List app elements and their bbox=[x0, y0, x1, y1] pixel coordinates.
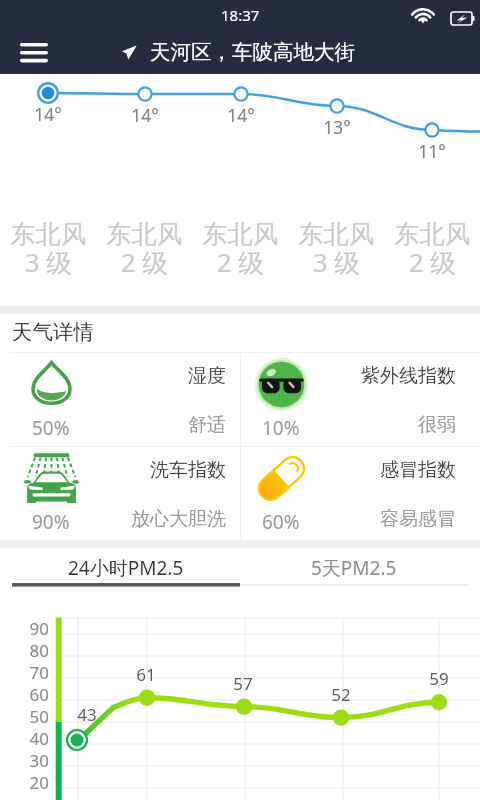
staticText: 80 bbox=[17, 639, 49, 662]
staticText: 5天PM2.5 bbox=[311, 555, 397, 581]
button[interactable]: Menu bbox=[0, 30, 68, 74]
staticText: 20 bbox=[17, 771, 49, 794]
staticText: 14° bbox=[8, 102, 88, 126]
staticText: 2 级 bbox=[217, 245, 264, 280]
staticText: 东北风 bbox=[298, 218, 375, 250]
staticText: 60% bbox=[262, 509, 300, 535]
button[interactable]: 60% bbox=[240, 447, 470, 540]
staticText: 感冒指数 bbox=[380, 458, 456, 482]
staticText: 舒适 bbox=[188, 413, 226, 437]
staticText: 紫外线指数 bbox=[361, 364, 456, 388]
staticText: 14° bbox=[201, 103, 281, 127]
button[interactable]: 24小时PM2.5 bbox=[12, 548, 240, 591]
staticText: 容易感冒 bbox=[380, 507, 456, 531]
staticText: 57 bbox=[213, 672, 273, 695]
staticText: 30 bbox=[17, 749, 49, 772]
button[interactable]: 50% bbox=[10, 353, 240, 446]
staticText: 很弱 bbox=[418, 413, 456, 437]
staticText: 50 bbox=[17, 705, 49, 728]
staticText: 10% bbox=[262, 415, 300, 441]
staticText: 洗车指数 bbox=[150, 458, 226, 482]
staticText: 放心大胆洗 bbox=[131, 507, 226, 531]
staticText: 50% bbox=[32, 415, 70, 441]
staticText: 14° bbox=[105, 103, 185, 127]
staticText: 东北风 bbox=[106, 218, 183, 250]
staticText: 43 bbox=[57, 703, 117, 726]
staticText: 52 bbox=[311, 683, 371, 706]
staticText: 天河区，车陂高地大街 bbox=[150, 39, 355, 65]
staticText: 59 bbox=[409, 667, 469, 690]
staticText: 湿度 bbox=[188, 364, 226, 388]
staticText: 东北风 bbox=[202, 218, 279, 250]
staticText: 90 bbox=[17, 617, 49, 640]
staticText: 东北风 bbox=[394, 218, 471, 250]
staticText: 东北风 bbox=[10, 218, 87, 250]
staticText: 70 bbox=[17, 661, 49, 684]
staticText: 60 bbox=[17, 683, 49, 706]
staticText: 天气详情 bbox=[12, 319, 94, 345]
staticText: 2 级 bbox=[409, 245, 456, 280]
staticText: 3 级 bbox=[25, 245, 72, 280]
staticText: 90% bbox=[32, 509, 70, 535]
staticText: 2 级 bbox=[121, 245, 168, 280]
button[interactable]: 10% bbox=[240, 353, 470, 446]
button[interactable]: 90% bbox=[10, 447, 240, 540]
staticText: 24小时PM2.5 bbox=[68, 555, 184, 581]
staticText: 18:37 bbox=[221, 5, 260, 25]
staticText: 13° bbox=[297, 115, 377, 139]
button[interactable]: 5天PM2.5 bbox=[240, 548, 468, 591]
staticText: 11° bbox=[392, 139, 472, 163]
staticText: 3 级 bbox=[313, 245, 360, 280]
staticText: 61 bbox=[116, 663, 176, 686]
staticText: 40 bbox=[17, 727, 49, 750]
